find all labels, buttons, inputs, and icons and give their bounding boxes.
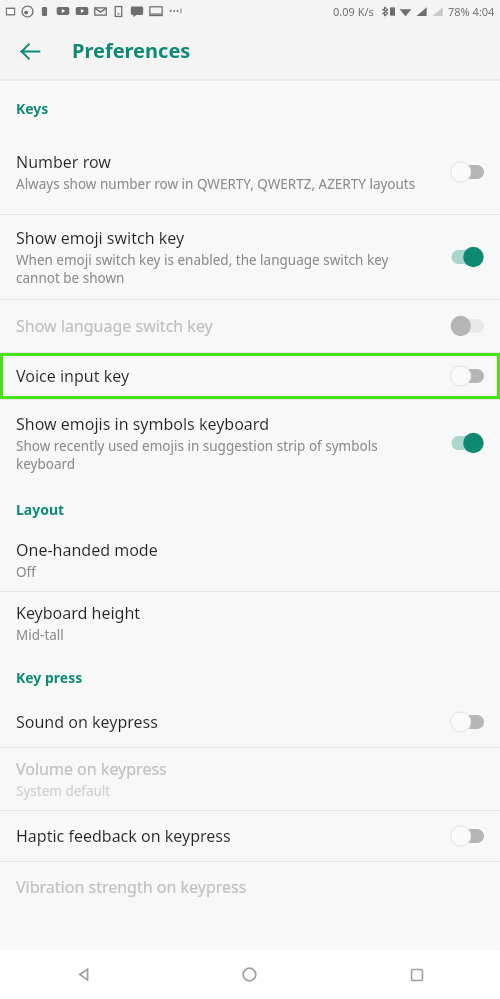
staticText: Volume on keypress (16, 758, 167, 780)
staticText: Show emojis in symbols keyboard (16, 413, 269, 435)
staticText: Key press (16, 668, 83, 687)
button[interactable]: Show emojis in symbols keyboard (0, 400, 500, 486)
staticText: Number row (16, 151, 111, 173)
button[interactable]: Home (166, 950, 333, 999)
staticText: Off (16, 563, 36, 581)
staticText: 78% 4:04 (448, 4, 495, 19)
staticText: Show recently used emojis in suggestion … (16, 437, 428, 473)
staticText: Voice input key (16, 365, 130, 387)
button[interactable]: Show language switch key (0, 300, 500, 352)
staticText: 0.09 K/s (333, 4, 374, 19)
staticText: Sound on keypress (16, 711, 158, 733)
button[interactable]: Recents (333, 950, 500, 999)
staticText: Always show number row in QWERTY, QWERTZ… (16, 175, 416, 193)
staticText: One-handed mode (16, 539, 158, 561)
staticText: System default (16, 782, 111, 800)
staticText: Layout (16, 500, 65, 519)
button[interactable]: Haptic feedback on keypress (0, 811, 500, 861)
button[interactable]: One-handed mode (0, 529, 500, 591)
button[interactable]: Show emoji switch key (0, 215, 500, 299)
button[interactable]: Back (10, 31, 50, 71)
staticText: Show emoji switch key (16, 227, 185, 249)
button[interactable]: Number row (0, 130, 500, 214)
staticText: Vibration strength on keypress (16, 876, 247, 898)
staticText: Haptic feedback on keypress (16, 825, 231, 847)
button[interactable]: Vibration strength on keypress (0, 862, 500, 912)
button[interactable]: Voice input key (0, 353, 500, 399)
button[interactable]: Volume on keypress (0, 748, 500, 810)
staticText: Mid-tall (16, 626, 64, 644)
staticText: When emoji switch key is enabled, the la… (16, 251, 428, 287)
staticText: Keyboard height (16, 602, 141, 624)
button[interactable]: Back (0, 950, 166, 999)
staticText: Show language switch key (16, 315, 213, 337)
staticText: Preferences (72, 37, 191, 64)
button[interactable]: Sound on keypress (0, 697, 500, 747)
staticText: Keys (16, 99, 49, 118)
button[interactable]: Keyboard height (0, 592, 500, 654)
